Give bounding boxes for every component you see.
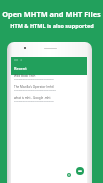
button[interactable]: Wild Book Tech — [11, 75, 87, 86]
button[interactable]: The Mozilla's Operator (mht) — [11, 86, 87, 97]
staticText: Open MHTM and MHT Files — [2, 9, 101, 19]
staticText: Recent — [14, 66, 27, 71]
button[interactable]: Open folder — [76, 167, 84, 175]
button[interactable]: what is mht - Google .mht — [11, 97, 87, 108]
staticText: storage/emulated/0/Download/Book — [14, 78, 54, 81]
staticText: Wild Book Tech — [14, 74, 36, 78]
staticText: The Mozilla's Operator (mht) — [14, 85, 54, 89]
button[interactable]: Search — [67, 173, 71, 177]
staticText: what is mht - Google .mht — [14, 96, 51, 100]
staticText: storage/emulated/0/Download/what — [14, 100, 54, 103]
staticText: storage/emulated/0/Download/Mozilla — [14, 89, 56, 92]
staticText: HTM & HTML is also supported — [10, 22, 94, 29]
